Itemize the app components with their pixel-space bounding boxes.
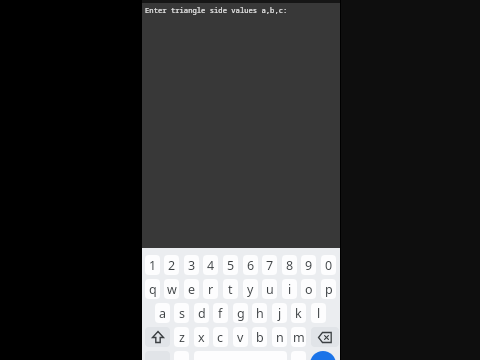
staticText: d xyxy=(198,305,206,322)
button[interactable]: e xyxy=(184,279,199,299)
button[interactable]: 6 xyxy=(243,255,258,275)
button[interactable]: w xyxy=(164,279,179,299)
button[interactable]: j xyxy=(272,303,287,323)
staticText: g xyxy=(237,305,245,322)
staticText: b xyxy=(256,329,264,346)
staticText: a xyxy=(159,305,167,322)
staticText: z xyxy=(179,329,185,346)
staticText: e xyxy=(188,281,196,298)
staticText: o xyxy=(305,281,313,298)
button[interactable]: f xyxy=(213,303,228,323)
staticText: 7 xyxy=(266,257,274,274)
button[interactable]: g xyxy=(233,303,248,323)
staticText: m xyxy=(293,329,305,346)
button[interactable]: v xyxy=(233,327,248,347)
staticText: 4 xyxy=(207,257,215,274)
button[interactable]: x xyxy=(194,327,209,347)
button[interactable]: 3 xyxy=(184,255,199,275)
button[interactable]: o xyxy=(301,279,316,299)
staticText: j xyxy=(278,305,282,322)
button[interactable] xyxy=(311,327,339,347)
button[interactable]: i xyxy=(282,279,297,299)
button[interactable]: c xyxy=(213,327,228,347)
staticText: r xyxy=(208,281,214,298)
staticText: t xyxy=(228,281,233,298)
staticText: 5 xyxy=(227,257,235,274)
staticText: 0 xyxy=(325,257,333,274)
staticText: k xyxy=(295,305,302,322)
button[interactable]: k xyxy=(291,303,306,323)
staticText: w xyxy=(167,281,177,298)
button[interactable]: 2 xyxy=(164,255,179,275)
button[interactable] xyxy=(145,327,170,347)
button[interactable]: y xyxy=(243,279,258,299)
staticText: 6 xyxy=(247,257,255,274)
staticText: q xyxy=(149,281,157,298)
button[interactable]: 7 xyxy=(262,255,277,275)
button[interactable]: s xyxy=(174,303,189,323)
button[interactable]: m xyxy=(291,327,306,347)
button[interactable]: d xyxy=(194,303,209,323)
staticText: 9 xyxy=(305,257,313,274)
staticText: v xyxy=(237,329,244,346)
button[interactable]: 4 xyxy=(203,255,218,275)
button[interactable]: 8 xyxy=(282,255,297,275)
button[interactable]: 0 xyxy=(321,255,336,275)
staticText: i xyxy=(288,281,292,298)
staticText: 8 xyxy=(286,257,294,274)
button[interactable]: 5 xyxy=(223,255,238,275)
button[interactable]: z xyxy=(174,327,189,347)
staticText: c xyxy=(217,329,224,346)
staticText: h xyxy=(256,305,264,322)
staticText: y xyxy=(247,281,254,298)
button[interactable]: 9 xyxy=(301,255,316,275)
button[interactable] xyxy=(310,351,336,360)
button[interactable]: 1 xyxy=(145,255,160,275)
staticText: 2 xyxy=(168,257,176,274)
staticText: n xyxy=(276,329,284,346)
staticText: Enter triangle side values a,b,c: xyxy=(145,5,288,15)
staticText: u xyxy=(266,281,274,298)
button[interactable]: r xyxy=(203,279,218,299)
button[interactable]: a xyxy=(155,303,170,323)
staticText: x xyxy=(198,329,205,346)
button[interactable]: q xyxy=(145,279,160,299)
button[interactable]: p xyxy=(321,279,336,299)
staticText: l xyxy=(317,305,321,322)
staticText: 1 xyxy=(149,257,157,274)
button[interactable]: n xyxy=(272,327,287,347)
staticText: 3 xyxy=(188,257,196,274)
staticText: f xyxy=(218,305,223,322)
button[interactable]: h xyxy=(252,303,267,323)
staticText: p xyxy=(325,281,333,298)
button[interactable]: l xyxy=(311,303,326,323)
button[interactable]: t xyxy=(223,279,238,299)
button[interactable]: b xyxy=(252,327,267,347)
staticText: s xyxy=(179,305,185,322)
button[interactable]: u xyxy=(262,279,277,299)
